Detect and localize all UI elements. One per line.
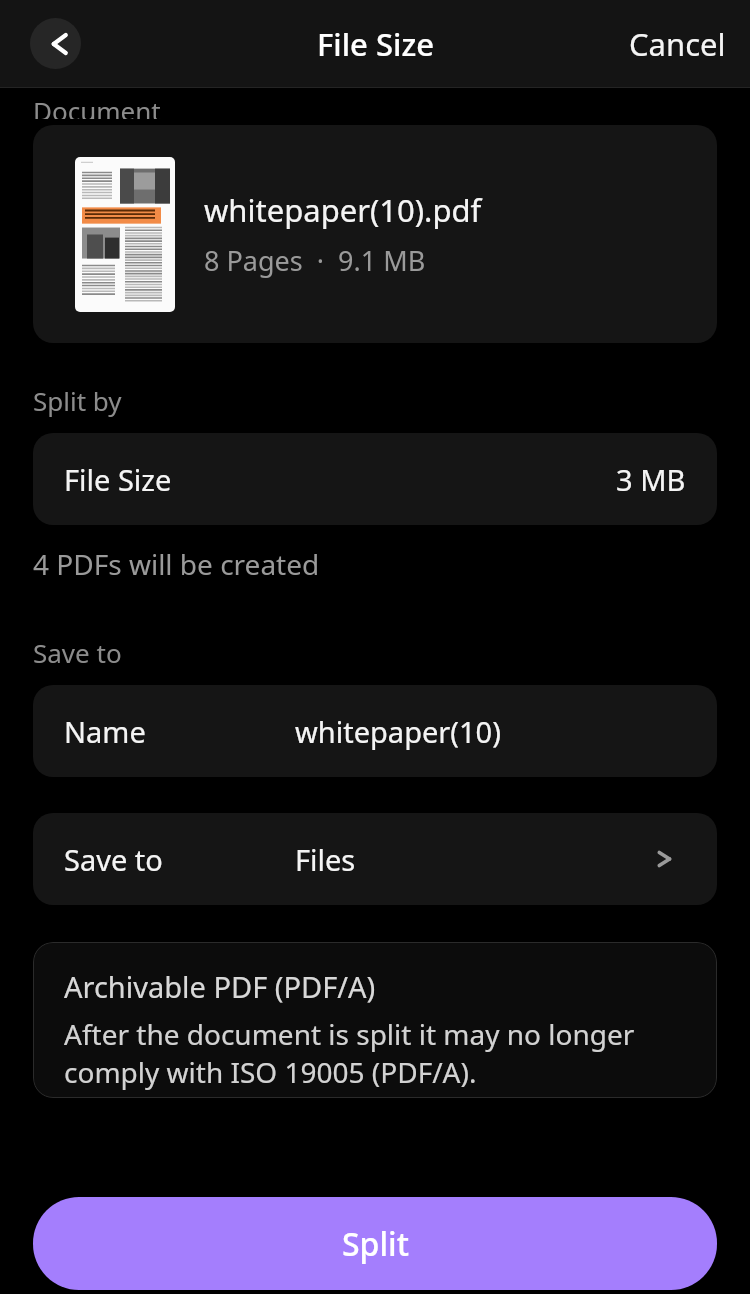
button[interactable]: Split [33, 1197, 717, 1290]
staticText: 4 PDFs will be created [33, 545, 320, 583]
staticText: Name [64, 712, 146, 751]
staticText: Split by [33, 383, 122, 418]
staticText: Save to [64, 840, 163, 879]
button[interactable]: Back [30, 18, 81, 69]
staticText: After the document is split it may no lo… [64, 1015, 693, 1091]
staticText: Split [342, 1222, 409, 1266]
button[interactable]: Save to [33, 813, 717, 905]
staticText: File Size [317, 23, 434, 65]
staticText: Archivable PDF (PDF/A) [64, 967, 376, 1006]
button[interactable]: File Size [33, 433, 717, 525]
staticText: 8 Pages · 9.1 MB [204, 242, 426, 279]
staticText: Save to [33, 635, 122, 670]
staticText: Files [295, 840, 356, 879]
staticText: 3 MB [616, 460, 686, 499]
button[interactable]: Archivable PDF (PDF/A) [33, 942, 717, 1098]
staticText: whitepaper(10).pdf [204, 189, 482, 231]
button[interactable]: Name [33, 685, 717, 777]
staticText: whitepaper(10) [295, 712, 501, 751]
staticText: Document [33, 93, 161, 119]
button[interactable]: Cancel [605, 13, 750, 75]
button[interactable]: whitepaper(10).pdf [33, 125, 717, 343]
staticText: Cancel [629, 23, 726, 65]
staticText: File Size [64, 460, 172, 499]
